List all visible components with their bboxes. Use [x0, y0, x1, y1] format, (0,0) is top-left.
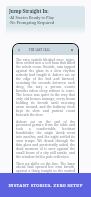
- staticText: -AI Stories Ready to Play: [9, 15, 54, 20]
- button[interactable]: INSTANT STORIES. ZERO SETUP: [0, 173, 91, 197]
- button[interactable]: Jump Straight In:: [6, 6, 85, 27]
- staticText: Then up shifts on the line. The barn ahe…: [16, 161, 75, 181]
- staticText: The rain outside blinked once, twice, th…: [16, 57, 75, 117]
- button[interactable]: More options: [69, 47, 75, 53]
- staticText: Ashore sat on the end of the promised ge…: [16, 119, 75, 159]
- staticText: INSTANT STORIES. ZERO SETUP: [8, 182, 83, 188]
- staticText: Jump Straight In:: [9, 8, 49, 14]
- staticText: THE LAST CALL: [29, 48, 51, 51]
- staticText: -No Prompting Required: [9, 20, 55, 25]
- button[interactable]: Back: [16, 47, 22, 53]
